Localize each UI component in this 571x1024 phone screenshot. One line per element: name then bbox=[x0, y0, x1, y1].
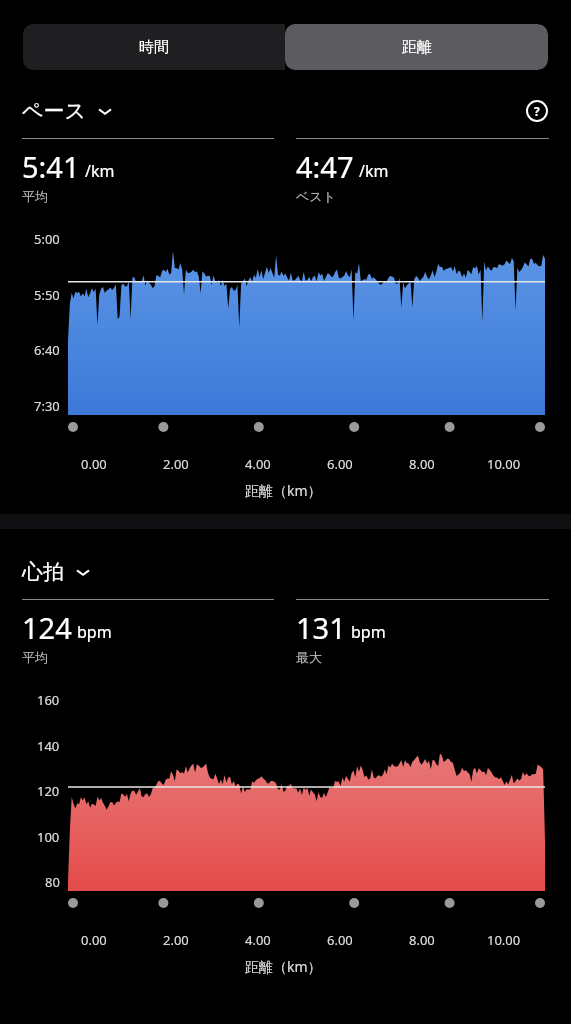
staticText: 2.00 bbox=[163, 455, 189, 473]
staticText: 時間 bbox=[139, 38, 169, 57]
staticText: ペース bbox=[22, 98, 86, 124]
staticText: 2.00 bbox=[163, 931, 189, 949]
staticText: 6:40 bbox=[34, 341, 60, 359]
staticText: 10.00 bbox=[487, 931, 521, 949]
staticText: /km bbox=[359, 160, 389, 182]
staticText: 8.00 bbox=[409, 455, 435, 473]
staticText: 160 bbox=[37, 691, 60, 709]
staticText: ? bbox=[534, 103, 540, 119]
staticText: bpm bbox=[77, 621, 112, 643]
button[interactable]: 4:47 bbox=[296, 138, 549, 204]
staticText: 距離（km） bbox=[245, 481, 322, 500]
staticText: 10.00 bbox=[487, 455, 521, 473]
button[interactable]: 124 bbox=[22, 599, 274, 665]
button[interactable]: Expand ペース bbox=[95, 101, 115, 121]
staticText: 0.00 bbox=[81, 455, 107, 473]
staticText: 7:30 bbox=[34, 397, 60, 415]
staticText: 4.00 bbox=[245, 455, 271, 473]
staticText: 8.00 bbox=[409, 931, 435, 949]
staticText: 距離（km） bbox=[245, 957, 322, 976]
staticText: 距離 bbox=[402, 38, 432, 57]
button[interactable]: 時間 bbox=[23, 24, 285, 70]
staticText: 4.00 bbox=[245, 931, 271, 949]
staticText: 4:47 bbox=[296, 147, 354, 186]
staticText: 124 bbox=[22, 608, 72, 647]
staticText: 最大 bbox=[296, 649, 322, 665]
staticText: 0.00 bbox=[81, 931, 107, 949]
staticText: 心拍 bbox=[22, 559, 64, 585]
staticText: 6.00 bbox=[327, 931, 353, 949]
button[interactable]: Expand 心拍 bbox=[73, 562, 93, 582]
button[interactable]: 距離 bbox=[285, 24, 548, 70]
staticText: ベスト bbox=[296, 188, 336, 204]
staticText: 平均 bbox=[22, 649, 48, 665]
staticText: 5:41 bbox=[22, 147, 80, 186]
staticText: 5:00 bbox=[34, 230, 60, 248]
button[interactable]: Help bbox=[525, 99, 549, 123]
button[interactable]: 5:41 bbox=[22, 138, 274, 204]
staticText: 5:50 bbox=[34, 286, 60, 304]
staticText: 80 bbox=[45, 873, 60, 891]
staticText: 平均 bbox=[22, 188, 48, 204]
button[interactable]: 131 bbox=[296, 599, 549, 665]
staticText: bpm bbox=[351, 621, 386, 643]
staticText: 140 bbox=[37, 737, 60, 755]
staticText: 120 bbox=[37, 782, 60, 800]
staticText: /km bbox=[85, 160, 115, 182]
staticText: 100 bbox=[37, 828, 60, 846]
staticText: 131 bbox=[296, 608, 346, 647]
staticText: 6.00 bbox=[327, 455, 353, 473]
